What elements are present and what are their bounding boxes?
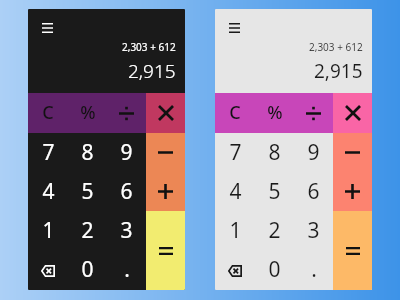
button[interactable]: Multiply [333, 93, 372, 133]
staticText: 9 [120, 138, 133, 167]
button[interactable]: Add [333, 172, 372, 211]
staticText: 1 [42, 216, 55, 245]
staticText: . [124, 255, 130, 284]
staticText: % [267, 100, 283, 125]
staticText: 2,303 + 612 [309, 40, 363, 54]
staticText: 6 [307, 177, 320, 206]
staticText: 8 [81, 138, 94, 167]
staticText: 6 [120, 177, 133, 206]
button[interactable]: 0 [68, 251, 107, 290]
button[interactable]: 6 [294, 173, 333, 212]
staticText: 4 [42, 177, 55, 206]
staticText: 2,915 [314, 58, 363, 84]
staticText: 5 [81, 177, 94, 206]
staticText: 8 [268, 138, 281, 167]
staticText: % [80, 100, 96, 125]
staticText: 9 [307, 138, 320, 167]
button[interactable]: 7 [28, 133, 68, 173]
button[interactable]: 3 [294, 212, 333, 251]
button[interactable]: 4 [215, 173, 255, 212]
staticText: 7 [42, 138, 55, 167]
staticText: C [42, 100, 54, 125]
button[interactable]: Menu [42, 23, 53, 33]
staticText: 5 [268, 177, 281, 206]
button[interactable]: Equals [146, 211, 185, 290]
button[interactable]: 1 [215, 212, 255, 251]
button[interactable]: 8 [255, 133, 294, 173]
staticText: 4 [229, 177, 242, 206]
button[interactable]: Equals [333, 211, 372, 290]
button[interactable]: 8 [68, 133, 107, 173]
button[interactable]: Backspace [215, 251, 255, 290]
button[interactable]: Subtract [146, 133, 185, 172]
button[interactable]: 5 [68, 173, 107, 212]
staticText: 0 [81, 255, 94, 284]
button[interactable]: Subtract [333, 133, 372, 172]
staticText: 1 [229, 216, 242, 245]
staticText: 2,303 + 612 [122, 40, 176, 54]
button[interactable]: 5 [255, 173, 294, 212]
button[interactable]: % [68, 93, 107, 133]
staticText: C [229, 100, 241, 125]
staticText: 3 [307, 216, 320, 245]
button[interactable]: 4 [28, 173, 68, 212]
staticText: . [311, 255, 317, 284]
button[interactable]: Menu [229, 23, 240, 33]
button[interactable]: % [255, 93, 294, 133]
staticText: 2 [268, 216, 281, 245]
button[interactable]: Divide [107, 93, 146, 133]
staticText: 7 [229, 138, 242, 167]
button[interactable]: 2 [255, 212, 294, 251]
staticText: 2 [81, 216, 94, 245]
button[interactable]: 6 [107, 173, 146, 212]
button[interactable]: 9 [294, 133, 333, 173]
button[interactable]: C [28, 93, 68, 133]
button[interactable]: 3 [107, 212, 146, 251]
button[interactable]: 1 [28, 212, 68, 251]
button[interactable]: Add [146, 172, 185, 211]
button[interactable]: 7 [215, 133, 255, 173]
button[interactable]: 9 [107, 133, 146, 173]
button[interactable]: . [294, 251, 333, 290]
staticText: 0 [268, 255, 281, 284]
button[interactable]: 2 [68, 212, 107, 251]
button[interactable]: Divide [294, 93, 333, 133]
button[interactable]: Multiply [146, 93, 185, 133]
button[interactable]: C [215, 93, 255, 133]
button[interactable]: . [107, 251, 146, 290]
staticText: 2,915 [128, 58, 176, 84]
button[interactable]: 0 [255, 251, 294, 290]
staticText: 3 [120, 216, 133, 245]
button[interactable]: Backspace [28, 251, 68, 290]
